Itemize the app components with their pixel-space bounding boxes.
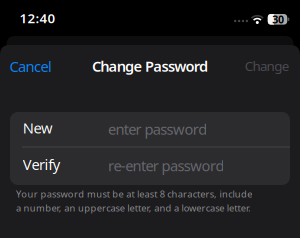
- staticText: enter password: [108, 119, 207, 139]
- staticText: New: [23, 118, 53, 138]
- staticText: a number, an uppercase letter, and a low…: [16, 202, 251, 214]
- staticText: Your password must be at least 8 charact…: [16, 188, 252, 200]
- staticText: re-enter password: [108, 156, 224, 175]
- staticText: Change: [245, 57, 290, 75]
- staticText: 30: [272, 12, 284, 26]
- button[interactable]: Change: [234, 56, 290, 76]
- button[interactable]: Cancel: [9, 56, 65, 76]
- button[interactable]: Verify: [10, 148, 290, 183]
- staticText: Change Password: [92, 56, 208, 76]
- button[interactable]: New: [10, 112, 290, 147]
- staticText: Verify: [23, 155, 60, 174]
- staticText: Cancel: [9, 56, 52, 76]
- staticText: 12:40: [19, 9, 55, 27]
